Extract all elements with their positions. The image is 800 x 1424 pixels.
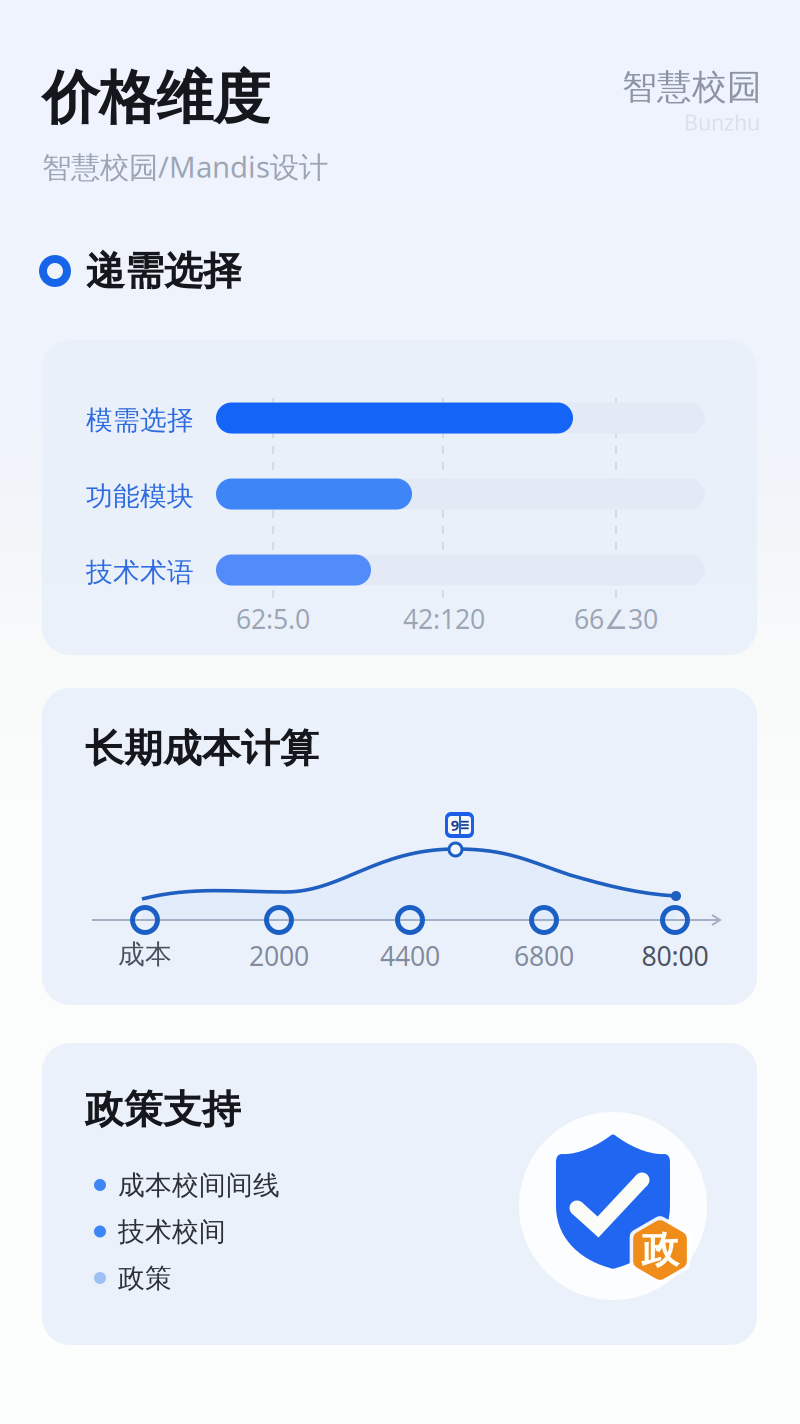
staticText: 技术术语 — [86, 556, 194, 589]
staticText: 递需选择 — [86, 247, 242, 295]
button[interactable]: 需求选择对比图 — [42, 340, 757, 655]
staticText: 智慧校园/Mandis设计 — [42, 147, 328, 186]
staticText: Bunzhu — [684, 108, 760, 136]
staticText: 80:00 — [641, 938, 708, 973]
staticText: 模需选择 — [86, 404, 194, 437]
staticText: 成本校间间线 — [118, 1169, 280, 1202]
staticText: 政 — [641, 1227, 678, 1273]
staticText: 智慧校园 — [622, 66, 762, 109]
button[interactable]: 递需选择 — [43, 248, 343, 294]
staticText: 42:120 — [403, 601, 485, 636]
staticText: 长期成本计算 — [85, 725, 319, 772]
staticText: 成本 — [118, 938, 172, 971]
button[interactable]: 政策支持 — [42, 1043, 757, 1345]
staticText: 9 — [451, 815, 459, 835]
staticText: 6800 — [514, 938, 574, 973]
staticText: 4400 — [380, 938, 440, 973]
button[interactable]: 长期成本计算趋势图 — [42, 688, 757, 1005]
staticText: 政策 — [118, 1262, 172, 1295]
staticText: 功能模块 — [86, 480, 194, 513]
staticText: 技术校间 — [118, 1215, 226, 1248]
staticText: 政策支持 — [85, 1086, 241, 1133]
staticText: 62:5.0 — [236, 601, 310, 636]
staticText: 66∠30 — [574, 601, 658, 636]
staticText: 价格维度 — [42, 63, 270, 133]
staticText: 2000 — [249, 938, 309, 973]
